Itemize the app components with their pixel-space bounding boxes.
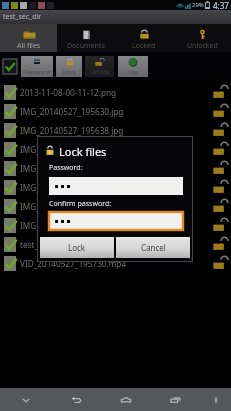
staticText: IMG_20140527_195702.jpg [20, 182, 213, 193]
button[interactable]: IMG_20140527_195711.jpg [0, 197, 231, 216]
staticText: IMG_20140527_195630.jpg [20, 106, 213, 117]
staticText: Up [129, 68, 138, 76]
button[interactable]: Documents [57, 24, 115, 52]
button[interactable]: Unlock [85, 56, 114, 77]
staticText: Unlocked [187, 41, 218, 51]
staticText: Documents [67, 41, 105, 51]
staticText: Password: [49, 163, 83, 173]
staticText: 2013-11-08-00-11-12.png [20, 87, 213, 98]
button[interactable]: IMG_20140527_195645.jpg [0, 140, 231, 159]
button[interactable]: Up [118, 56, 148, 77]
button[interactable]: More options [201, 388, 231, 411]
button[interactable]: IMG_20140527_195719.jpg [0, 216, 231, 235]
button[interactable]: 2013-11-08-00-11-12.png [0, 83, 231, 102]
button[interactable]: Select all [3, 59, 17, 74]
staticText: VID_20140527_195730.mp4 [20, 258, 213, 269]
button[interactable] [49, 212, 183, 230]
staticText: test_sec_dir [3, 12, 42, 22]
button[interactable]: All files [0, 24, 57, 52]
staticText: Password [23, 68, 51, 76]
staticText: All files [17, 41, 41, 51]
button[interactable]: Cancel [116, 237, 190, 258]
staticText: 4:37 [213, 0, 229, 10]
staticText: Cancel [141, 242, 166, 253]
staticText: Lock [63, 68, 76, 76]
button[interactable]: Recents [151, 388, 201, 411]
staticText: Lock files [59, 144, 107, 159]
staticText: IMG_20140527_195711.jpg [20, 201, 213, 212]
button[interactable]: Back [51, 388, 101, 411]
button[interactable]: Home [101, 388, 151, 411]
button[interactable]: Lock [40, 237, 114, 258]
button[interactable]: Unlocked [173, 24, 231, 52]
staticText: Locked [132, 41, 156, 51]
button[interactable] [49, 177, 183, 195]
staticText: IMG_20140527_195645.jpg [20, 144, 213, 155]
button[interactable]: IMG_20140527_195651.jpg [0, 159, 231, 178]
staticText: IMG_20140527_195651.jpg [20, 163, 213, 174]
button[interactable]: test_image_01.jpg [0, 235, 231, 254]
button[interactable]: Password [21, 56, 53, 77]
staticText: test_image_01.jpg [20, 239, 213, 250]
button[interactable]: Hide keyboard [0, 388, 51, 411]
staticText: Lock [68, 242, 86, 253]
staticText: IMG_20140527_195719.jpg [20, 220, 213, 231]
button[interactable]: IMG_20140527_195630.jpg [0, 102, 231, 121]
staticText: Confirm password: [49, 199, 112, 209]
button[interactable]: IMG_20140527_195638.jpg [0, 121, 231, 140]
button[interactable]: IMG_20140527_195702.jpg [0, 178, 231, 197]
staticText: Unlock [90, 68, 110, 76]
button[interactable]: Lock [56, 56, 82, 77]
staticText: 29% [192, 1, 204, 9]
button[interactable]: VID_20140527_195730.mp4 [0, 254, 231, 273]
button[interactable]: Locked [115, 24, 173, 52]
staticText: IMG_20140527_195638.jpg [20, 125, 213, 136]
